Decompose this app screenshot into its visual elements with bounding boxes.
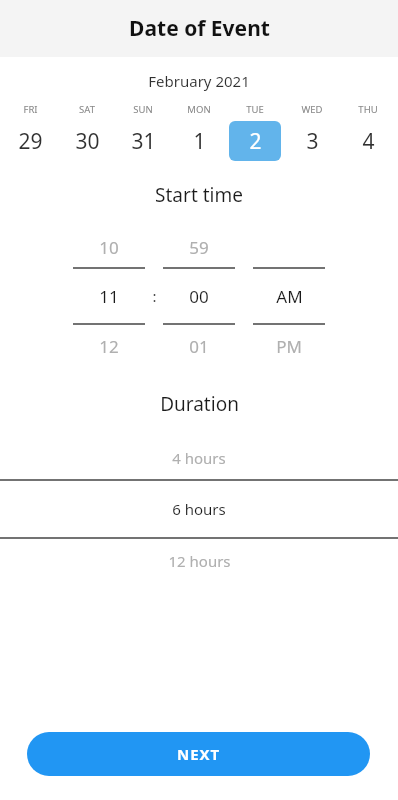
staticText: 29	[18, 127, 43, 156]
staticText: SUN	[133, 103, 153, 116]
staticText: AM	[276, 285, 303, 308]
staticText: TUE	[246, 103, 264, 116]
staticText: Start time	[155, 182, 243, 208]
staticText: 11	[99, 285, 119, 308]
button[interactable]: WED	[286, 103, 338, 161]
staticText: 12 hours	[168, 551, 231, 571]
staticText: Duration	[160, 391, 239, 417]
button[interactable]: FRI	[4, 103, 56, 161]
staticText: WED	[301, 103, 323, 116]
staticText: February 2021	[148, 71, 250, 91]
button[interactable]: THU	[342, 103, 394, 161]
staticText: 30	[75, 127, 100, 156]
staticText: NEXT	[177, 744, 220, 764]
staticText: MON	[187, 103, 211, 116]
staticText: 12	[99, 335, 119, 358]
button[interactable]: 6 hours	[0, 481, 398, 537]
button[interactable]: TUE	[229, 103, 281, 161]
staticText: 2	[249, 127, 262, 156]
staticText: 1	[193, 127, 206, 156]
staticText: 6 hours	[172, 499, 226, 519]
button[interactable]: 4 hours	[0, 445, 398, 471]
button[interactable]: 12 hours	[0, 548, 398, 574]
button[interactable]: AM	[253, 285, 325, 308]
staticText: 4	[362, 127, 375, 156]
staticText: :	[152, 286, 157, 306]
button[interactable]: SAT	[61, 103, 113, 161]
staticText: 3	[306, 127, 319, 156]
staticText: 01	[189, 335, 209, 358]
button[interactable]: 00	[163, 285, 235, 308]
staticText: FRI	[23, 103, 38, 116]
staticText: THU	[358, 103, 378, 116]
staticText: 59	[189, 236, 209, 259]
button[interactable]: 11	[73, 285, 145, 308]
staticText: 31	[131, 127, 156, 156]
staticText: 4 hours	[172, 448, 226, 468]
staticText: SAT	[79, 103, 95, 116]
staticText: PM	[276, 335, 302, 358]
staticText: Date of Event	[129, 14, 270, 43]
button[interactable]: NEXT	[27, 732, 370, 776]
button[interactable]: MON	[173, 103, 225, 161]
staticText: 00	[189, 285, 209, 308]
button[interactable]: SUN	[117, 103, 169, 161]
staticText: 10	[99, 236, 119, 259]
